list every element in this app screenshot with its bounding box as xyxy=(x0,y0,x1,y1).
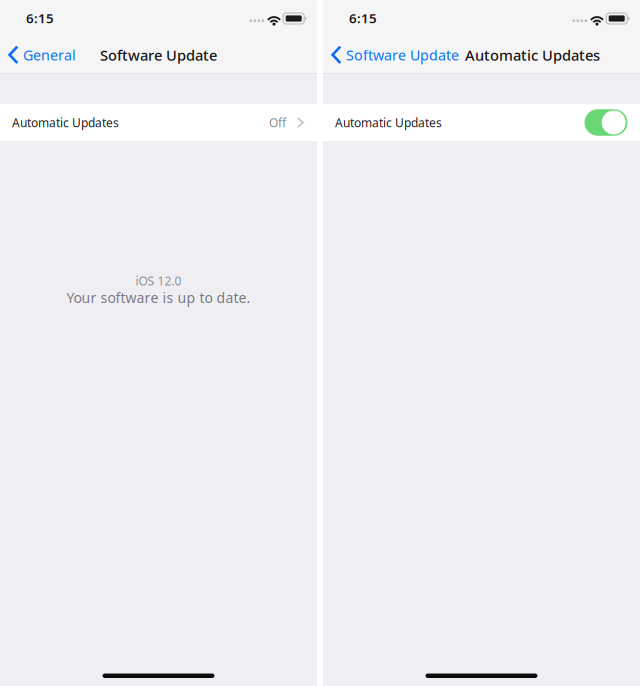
button[interactable]: Back to Software Update xyxy=(323,36,463,74)
staticText: Automatic Updates xyxy=(335,114,442,130)
button[interactable]: Back to General xyxy=(0,36,80,74)
staticText: 6:15 xyxy=(349,9,377,27)
staticText: 6:15 xyxy=(26,9,54,27)
staticText: Software Update xyxy=(100,45,217,65)
staticText: Automatic Updates xyxy=(12,114,119,130)
staticText: Automatic Updates xyxy=(465,45,600,65)
button[interactable]: Automatic Updates, on xyxy=(323,104,640,141)
staticText: Off xyxy=(269,114,286,130)
staticText: General xyxy=(23,45,76,65)
staticText: Software Update xyxy=(346,45,459,65)
button[interactable]: Automatic Updates xyxy=(0,104,317,141)
staticText: iOS 12.0 xyxy=(135,273,181,289)
staticText: Your software is up to date. xyxy=(66,288,250,307)
